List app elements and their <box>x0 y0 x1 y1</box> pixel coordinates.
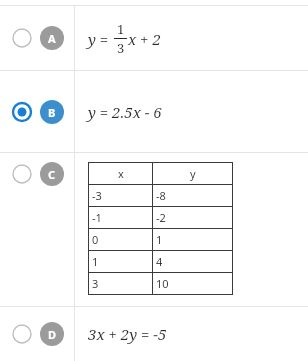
staticText: D <box>48 327 57 342</box>
staticText: y = 2.5x − 6 <box>88 102 162 122</box>
staticText: -1 <box>92 210 102 225</box>
staticText: -3 <box>92 188 102 203</box>
staticText: x + 2 <box>128 29 161 49</box>
staticText: 10 <box>156 276 169 291</box>
staticText: 1 <box>92 254 99 269</box>
staticText: y = <box>88 29 109 49</box>
staticText: C <box>48 167 56 182</box>
staticText: 1 <box>117 20 125 38</box>
staticText: 3 <box>117 39 125 57</box>
button[interactable]: Option A <box>0 6 308 70</box>
staticText: 3 <box>92 276 99 291</box>
staticText: 0 <box>92 232 99 247</box>
staticText: y <box>190 166 196 181</box>
staticText: -2 <box>156 210 166 225</box>
button[interactable]: Option C <box>0 153 308 306</box>
staticText: 1 <box>156 232 163 247</box>
staticText: -8 <box>156 188 166 203</box>
staticText: 4 <box>156 254 163 269</box>
button[interactable]: Option D <box>0 307 308 361</box>
staticText: x <box>118 166 124 181</box>
staticText: A <box>48 31 56 46</box>
button[interactable]: Option B <box>0 71 308 152</box>
staticText: B <box>48 105 56 120</box>
staticText: 3x + 2y = −5 <box>88 324 167 344</box>
